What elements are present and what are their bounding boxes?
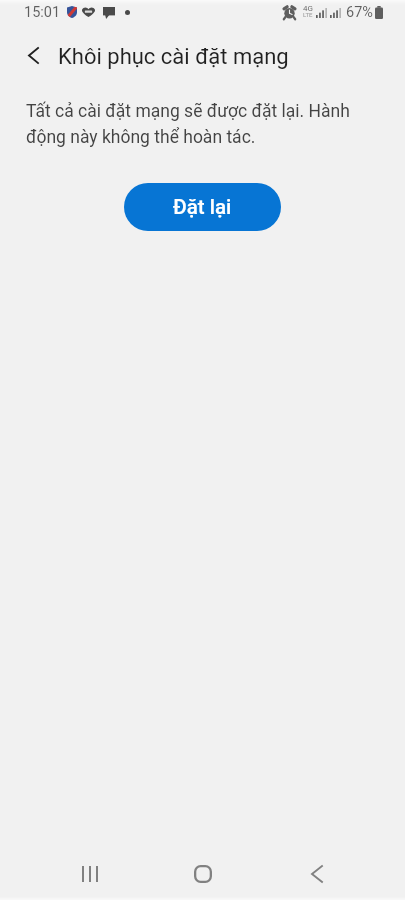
staticText: LTE xyxy=(303,11,313,18)
button[interactable]: Recent apps xyxy=(66,850,114,898)
staticText: Khôi phục cài đặt mạng xyxy=(58,44,289,70)
staticText: Tất cả cài đặt mạng sẽ được đặt lại. Hàn… xyxy=(26,101,368,148)
staticText: 67% xyxy=(346,4,373,21)
button[interactable]: Đặt lại xyxy=(124,183,281,231)
staticText: Đặt lại xyxy=(173,195,232,219)
button[interactable]: Home xyxy=(179,850,227,898)
button[interactable]: Back xyxy=(13,35,53,75)
staticText: 4G xyxy=(303,4,313,13)
button[interactable]: Back xyxy=(293,850,341,898)
staticText: 15:01 xyxy=(24,4,61,21)
